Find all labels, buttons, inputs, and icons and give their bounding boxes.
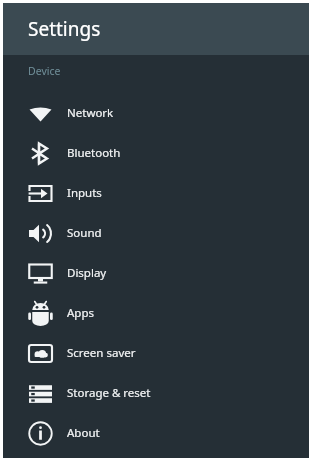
staticText: Screen saver: [67, 345, 136, 361]
button[interactable]: Inputs: [3, 173, 309, 213]
staticText: Settings: [28, 16, 101, 42]
staticText: Bluetooth: [67, 145, 121, 161]
button[interactable]: Network: [3, 93, 309, 133]
staticText: About: [67, 425, 100, 441]
button[interactable]: Display: [3, 253, 309, 293]
staticText: Inputs: [67, 185, 102, 201]
staticText: Device: [28, 64, 61, 78]
staticText: Network: [67, 105, 114, 121]
staticText: Storage & reset: [67, 385, 151, 401]
staticText: Sound: [67, 225, 102, 241]
staticText: Apps: [67, 305, 95, 321]
button[interactable]: Settings: [3, 3, 309, 55]
button[interactable]: Apps: [3, 293, 309, 333]
button[interactable]: Screen saver: [3, 333, 309, 373]
button[interactable]: Storage & reset: [3, 373, 309, 413]
button[interactable]: About: [3, 413, 309, 453]
button[interactable]: Bluetooth: [3, 133, 309, 173]
staticText: Display: [67, 265, 107, 281]
button[interactable]: Sound: [3, 213, 309, 253]
